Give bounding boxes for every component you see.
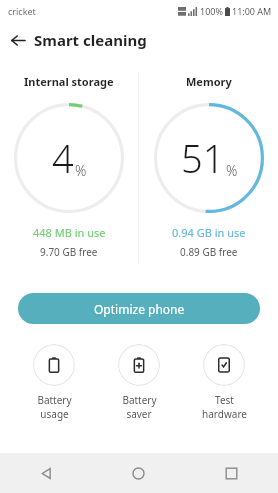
staticText: usage <box>40 407 69 421</box>
staticText: Battery <box>122 393 157 407</box>
staticText: % <box>75 161 87 180</box>
staticText: Smart cleaning <box>34 30 147 50</box>
staticText: % <box>226 161 238 180</box>
staticText: 11:00 AM <box>232 5 272 17</box>
staticText: 100% <box>200 5 223 17</box>
button[interactable]: Recents <box>185 453 278 493</box>
staticText: cricket <box>8 5 36 17</box>
staticText: 0.89 GB free <box>180 245 238 259</box>
button[interactable]: Test <box>183 344 265 421</box>
staticText: 0.94 GB in use <box>172 225 246 240</box>
staticText: Optimize phone <box>94 301 185 317</box>
staticText: 4 <box>52 132 74 184</box>
staticText: 51 <box>181 132 225 184</box>
staticText: Memory <box>186 74 232 89</box>
staticText: Test <box>215 393 234 407</box>
staticText: saver <box>126 407 152 421</box>
staticText: 448 MB in use <box>33 225 106 240</box>
button[interactable]: Home <box>92 453 185 493</box>
staticText: Internal storage <box>24 74 114 89</box>
button[interactable]: Battery <box>98 344 180 421</box>
staticText: hardware <box>202 407 247 421</box>
staticText: 9.70 GB free <box>40 245 98 259</box>
button[interactable]: Battery <box>13 344 95 421</box>
staticText: Battery <box>37 393 72 407</box>
button[interactable]: Back <box>0 23 34 57</box>
button[interactable]: Optimize phone <box>18 293 260 324</box>
button[interactable]: Back <box>0 453 92 493</box>
